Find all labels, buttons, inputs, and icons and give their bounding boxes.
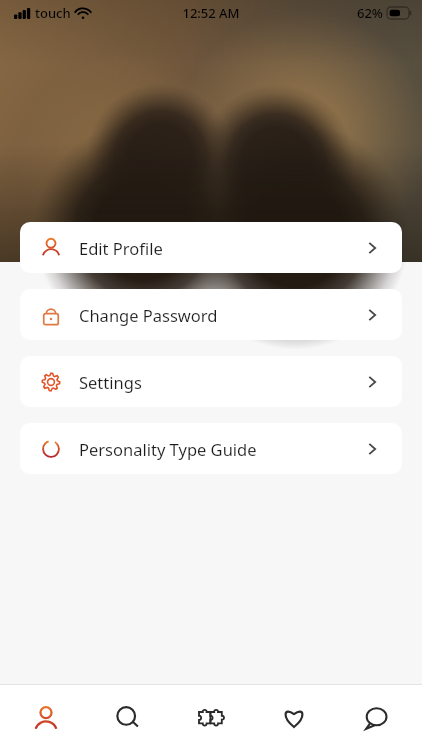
button[interactable]: Personality Type Guide [20, 423, 402, 474]
button[interactable]: Change Password [20, 289, 402, 340]
button[interactable]: Favorites [257, 689, 331, 747]
staticText: Personality Type Guide [79, 438, 257, 460]
staticText: Change Password [79, 304, 218, 326]
staticText: Edit Profile [79, 237, 163, 259]
staticText: 62% [357, 4, 383, 22]
staticText: Settings [79, 371, 142, 393]
button[interactable]: Profile [9, 689, 83, 747]
button[interactable]: Matches [174, 689, 248, 747]
staticText: touch [35, 4, 71, 22]
button[interactable]: Messages [339, 689, 413, 747]
button[interactable]: Edit Profile [20, 222, 402, 273]
button[interactable]: Search [91, 689, 165, 747]
button[interactable]: Settings [20, 356, 402, 407]
staticText: 12:52 AM [182, 4, 240, 22]
